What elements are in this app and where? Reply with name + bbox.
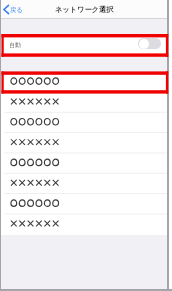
staticText: ネットワーク選択 bbox=[55, 5, 114, 14]
button[interactable]: ○○○○○○ bbox=[1, 72, 167, 92]
button[interactable]: ×××××× bbox=[1, 133, 167, 153]
button[interactable]: 戻る bbox=[2, 3, 24, 16]
button[interactable]: 自動 switch bbox=[138, 38, 161, 49]
button[interactable]: ○○○○○○ bbox=[1, 153, 167, 173]
staticText: 戻る bbox=[10, 6, 23, 14]
button[interactable]: ×××××× bbox=[1, 92, 167, 112]
button[interactable] bbox=[1, 34, 167, 57]
button[interactable]: ×××××× bbox=[1, 173, 167, 193]
button[interactable]: ×××××× bbox=[1, 214, 167, 234]
button[interactable]: ○○○○○○ bbox=[1, 112, 167, 132]
button[interactable]: ○○○○○○ bbox=[1, 194, 167, 214]
staticText: 自動 bbox=[9, 41, 21, 49]
